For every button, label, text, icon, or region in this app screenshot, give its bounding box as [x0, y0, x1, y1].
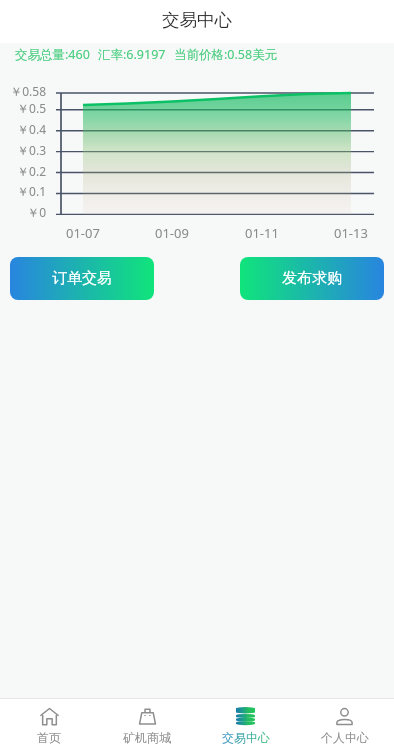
staticText: ￥0.2: [0, 163, 46, 179]
staticText: 当前价格:0.58美元: [174, 46, 278, 62]
staticText: 交易中心: [162, 9, 232, 31]
button[interactable]: 首页: [0, 699, 98, 751]
staticText: 01-11: [245, 224, 279, 242]
staticText: ￥0.58: [0, 83, 46, 99]
other: 个人中心: [335, 707, 354, 726]
staticText: ￥0.4: [0, 121, 46, 137]
staticText: 01-13: [334, 224, 368, 242]
staticText: 01-07: [66, 224, 100, 242]
staticText: ￥0.5: [0, 100, 46, 116]
other: 交易中心: [236, 707, 255, 726]
staticText: 交易总量:460: [15, 46, 90, 62]
staticText: 首页: [37, 730, 61, 745]
button[interactable]: 订单交易: [10, 257, 154, 300]
staticText: 交易中心: [222, 730, 270, 745]
staticText: ￥0.1: [0, 183, 46, 199]
staticText: 汇率:6.9197: [98, 46, 166, 62]
button[interactable]: 交易中心: [196, 699, 295, 751]
button[interactable]: 发布求购: [240, 257, 384, 300]
staticText: 01-09: [155, 224, 189, 242]
staticText: ￥0: [0, 204, 46, 220]
staticText: ￥0.3: [0, 142, 46, 158]
staticText: 发布求购: [282, 269, 342, 288]
other: 首页: [40, 707, 59, 726]
button[interactable]: 矿机商城: [98, 699, 196, 751]
button[interactable]: 个人中心: [295, 699, 394, 751]
staticText: 矿机商城: [123, 730, 171, 745]
staticText: 个人中心: [321, 730, 369, 745]
other: 矿机商城: [138, 707, 157, 726]
staticText: 订单交易: [52, 269, 112, 288]
